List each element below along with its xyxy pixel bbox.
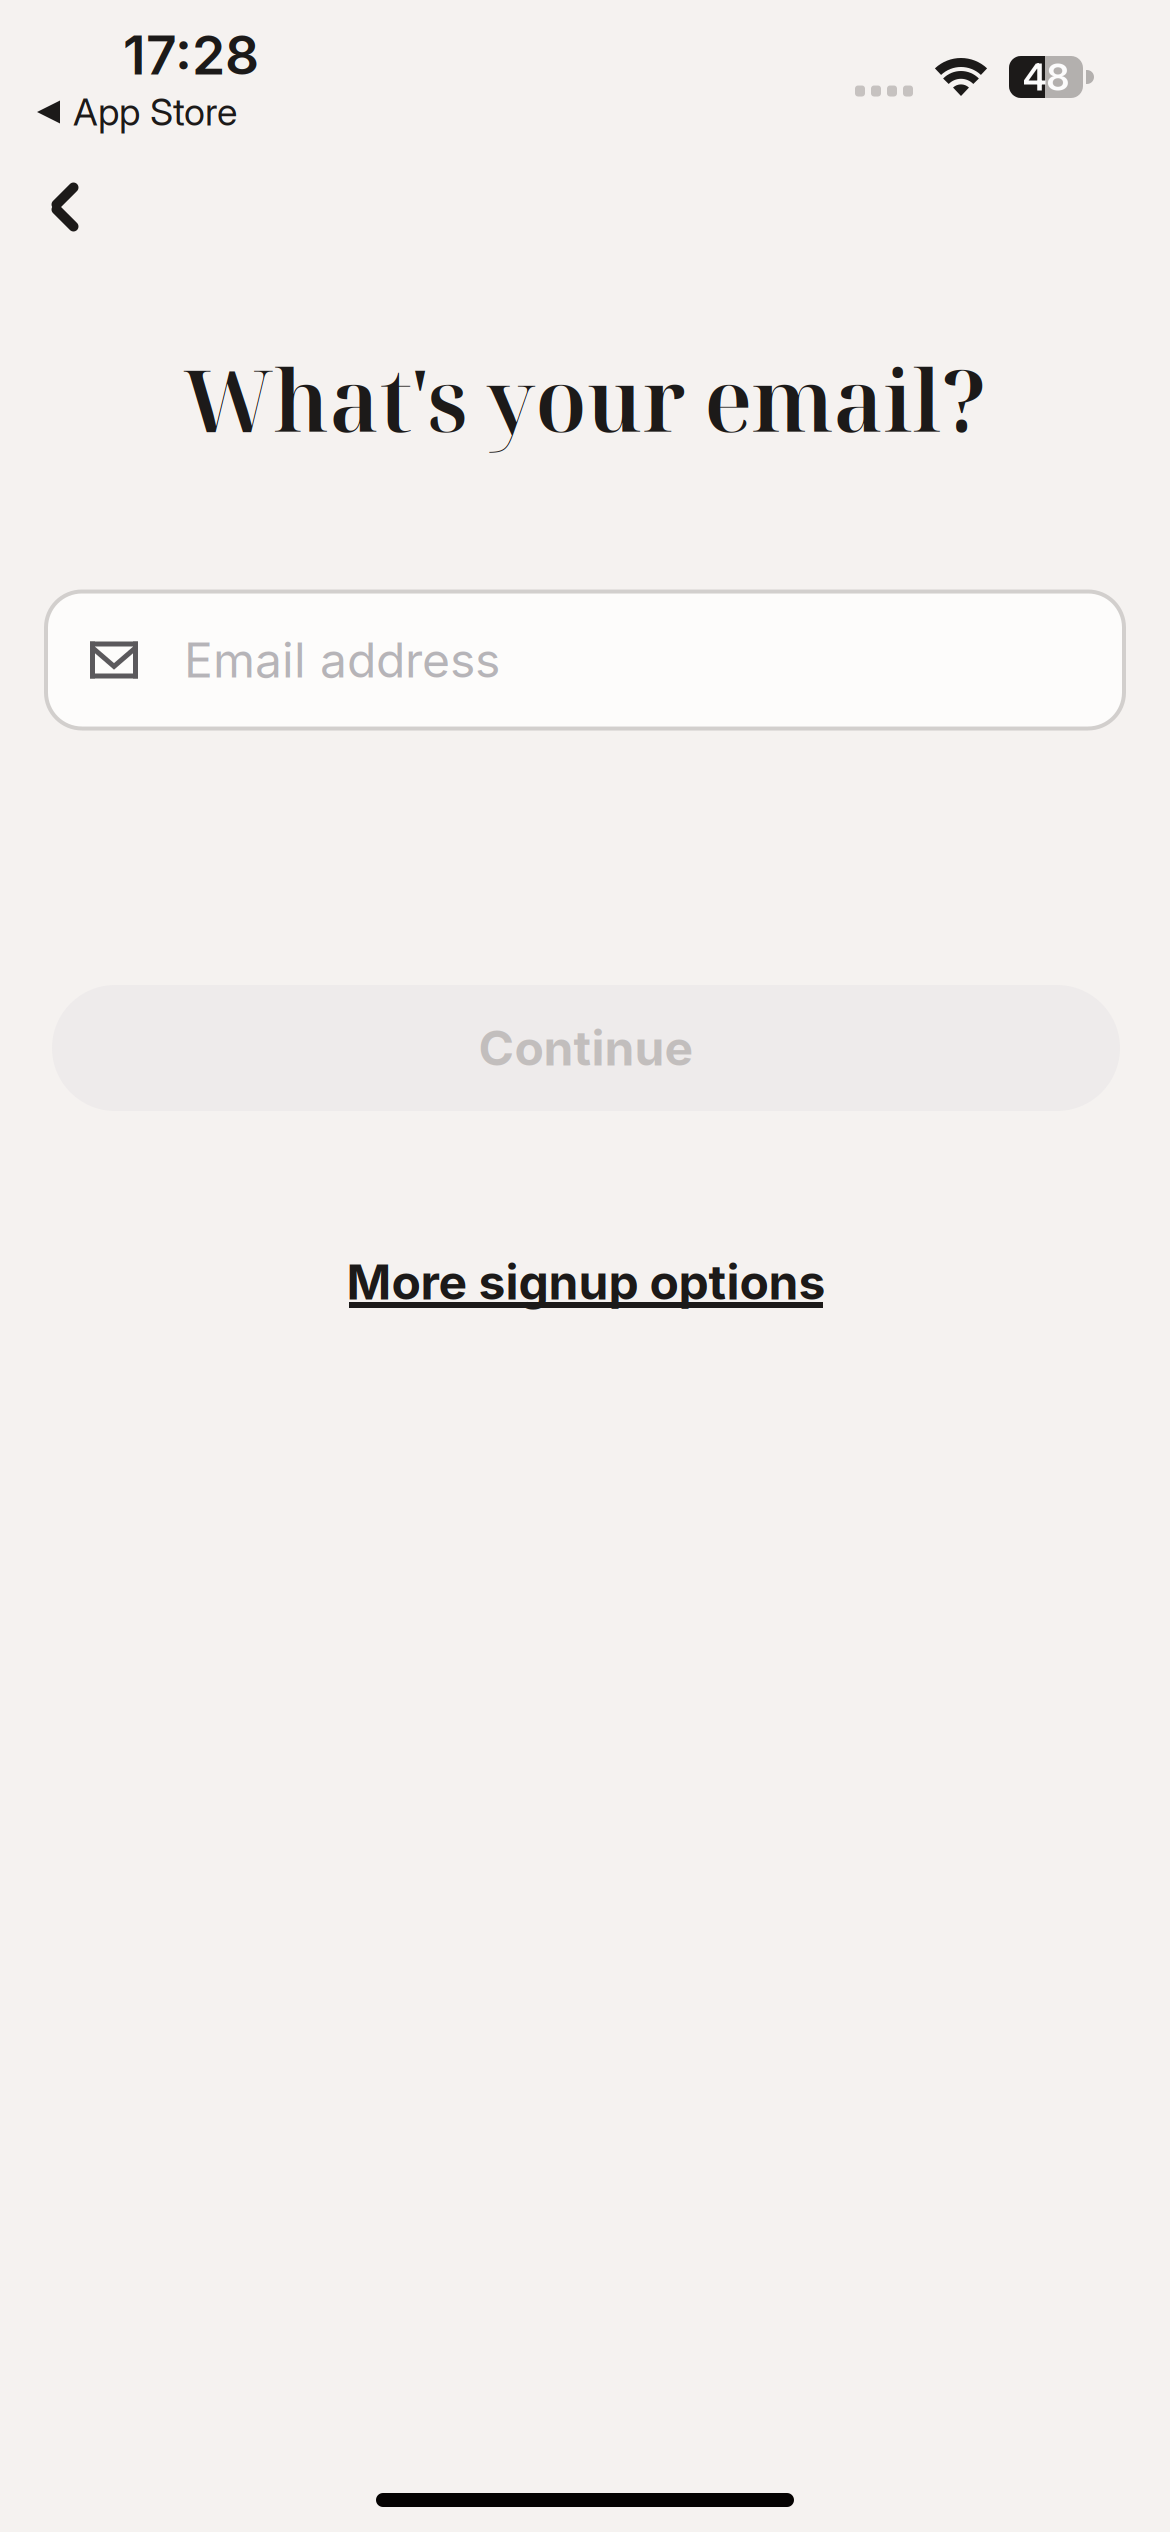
staticText: More signup options (346, 1253, 825, 1311)
staticText: 48 (1022, 54, 1069, 100)
button[interactable]: More signup options (326, 1253, 846, 1323)
button[interactable]: Continue (52, 985, 1120, 1111)
staticText: Email address (184, 631, 500, 689)
staticText: Continue (478, 1019, 693, 1077)
staticText: App Store (73, 89, 237, 135)
staticText: 17:28 (123, 23, 259, 87)
staticText: What's your email? (183, 341, 986, 457)
button[interactable]: Back (20, 162, 110, 252)
